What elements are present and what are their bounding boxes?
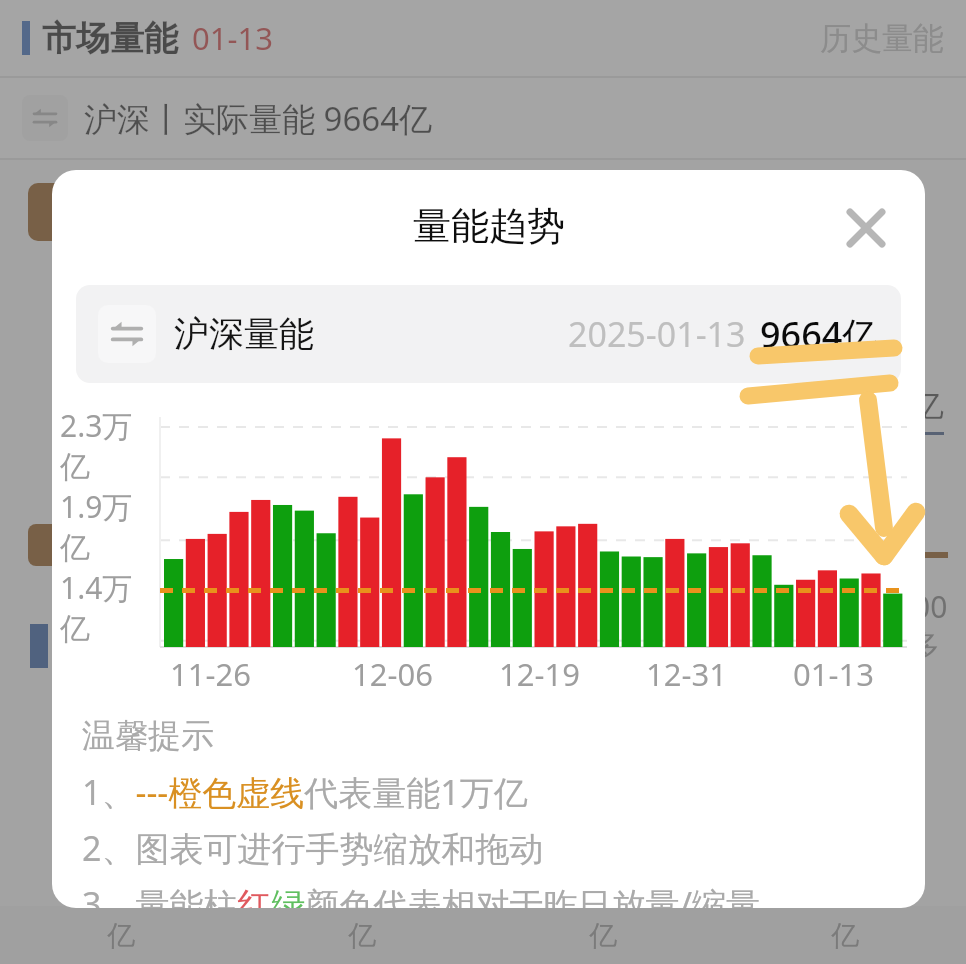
staticText: 亿 bbox=[912, 386, 944, 426]
button[interactable]: 亿 bbox=[241, 906, 482, 964]
button[interactable]: 沪深量能 bbox=[76, 285, 901, 383]
staticText: 11-26 bbox=[170, 653, 251, 695]
staticText: 亿 bbox=[107, 918, 135, 953]
staticText: 01-13 bbox=[192, 17, 273, 59]
button[interactable]: Close bbox=[835, 197, 897, 259]
staticText: 2、图表可进行手势缩放和拖动 bbox=[82, 825, 544, 871]
staticText: 9664亿 bbox=[760, 310, 879, 359]
staticText: 2.3万亿 bbox=[60, 405, 157, 486]
staticText: 亿 bbox=[831, 918, 859, 953]
staticText: 1.9万亿 bbox=[60, 486, 157, 567]
button[interactable]: 亿 bbox=[724, 906, 966, 964]
staticText: 亿 bbox=[589, 918, 617, 953]
staticText: 12-19 bbox=[499, 653, 580, 695]
staticText: 温馨提示 bbox=[82, 715, 214, 757]
staticText: 历史量能 bbox=[820, 19, 944, 58]
button[interactable]: 亿 bbox=[0, 906, 241, 964]
staticText: 多 bbox=[910, 627, 940, 665]
staticText: 2025-01-13 bbox=[568, 311, 746, 357]
staticText: 市场量能 bbox=[42, 17, 178, 60]
staticText: 亿 bbox=[348, 918, 376, 953]
staticText: 1.4万亿 bbox=[60, 567, 157, 648]
button[interactable]: 亿 bbox=[482, 906, 724, 964]
staticText: 12-31 bbox=[646, 653, 727, 695]
staticText: 01-13 bbox=[793, 653, 874, 695]
staticText: 3、量能柱红绿颜色代表相对于昨日放量/缩量 bbox=[82, 881, 761, 908]
staticText: 量能趋势 bbox=[413, 202, 565, 250]
staticText: 沪深丨实际量能 9664亿 bbox=[84, 96, 433, 141]
staticText: 沪深量能 bbox=[174, 312, 314, 356]
staticText: 1、---橙色虚线代表量能1万亿 bbox=[82, 769, 528, 815]
staticText: 00 bbox=[913, 586, 948, 627]
staticText: 12-06 bbox=[352, 653, 433, 695]
button[interactable]: 历史量能 bbox=[820, 19, 944, 58]
